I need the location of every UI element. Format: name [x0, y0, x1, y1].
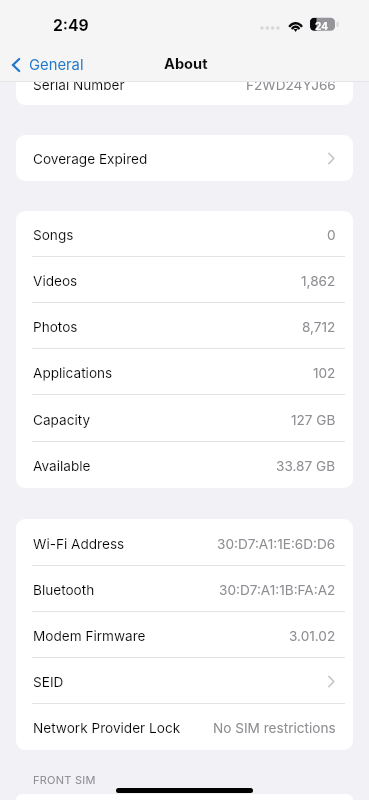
staticText: No SIM restrictions	[213, 720, 336, 736]
staticText: 24	[315, 20, 328, 32]
staticText: Wi-Fi Address	[33, 536, 125, 552]
button[interactable]: Coverage Expired	[16, 135, 353, 181]
staticText: Available	[33, 458, 91, 474]
button[interactable]: Photos	[16, 303, 353, 349]
button[interactable]: Bluetooth	[16, 566, 353, 612]
staticText: Photos	[33, 319, 78, 335]
staticText: 33.87 GB	[276, 458, 336, 474]
button[interactable]: SEID	[16, 658, 353, 704]
staticText: 3.01.02	[289, 628, 336, 644]
staticText: About	[164, 55, 208, 73]
staticText: F2WD24YJ66	[246, 77, 336, 93]
staticText: Coverage Expired	[33, 151, 148, 167]
staticText: 8,712	[302, 319, 336, 335]
staticText: Songs	[33, 227, 74, 243]
button[interactable]: Wi-Fi Address	[16, 519, 353, 566]
staticText: SEID	[33, 674, 64, 690]
staticText: Modem Firmware	[33, 628, 146, 644]
staticText: 2:49	[53, 16, 89, 35]
staticText: Bluetooth	[33, 582, 95, 598]
staticText: 30:D7:A1:1B:FA:A2	[219, 582, 336, 598]
button[interactable]: Videos	[16, 257, 353, 303]
staticText: 0	[327, 227, 336, 243]
button[interactable]: Modem Firmware	[16, 612, 353, 658]
button[interactable]: General	[0, 51, 94, 79]
button[interactable]: Network Provider Lock	[16, 704, 353, 750]
staticText: Network Provider Lock	[33, 720, 181, 736]
staticText: FRONT SIM	[33, 773, 96, 786]
staticText: General	[29, 56, 84, 74]
button[interactable]: Songs	[16, 211, 353, 257]
button[interactable]: Applications	[16, 349, 353, 395]
button[interactable]: Available	[16, 442, 353, 488]
staticText: Videos	[33, 273, 78, 289]
staticText: 127 GB	[291, 412, 336, 428]
staticText: Serial Number	[33, 77, 125, 93]
staticText: Applications	[33, 365, 113, 381]
staticText: 30:D7:A1:1E:6D:D6	[217, 536, 336, 552]
button[interactable]: Capacity	[16, 395, 353, 442]
staticText: 102	[313, 365, 336, 381]
staticText: 1,862	[301, 273, 336, 289]
staticText: Capacity	[33, 412, 91, 428]
